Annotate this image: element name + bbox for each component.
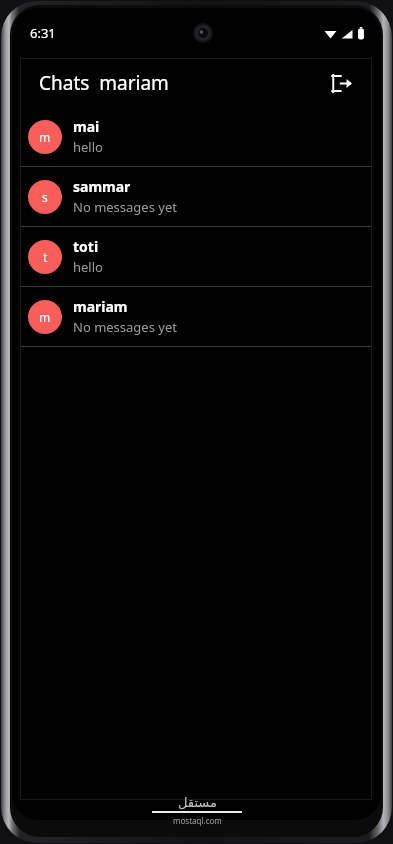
staticText: مستقل <box>178 795 217 810</box>
staticText: hello <box>73 138 103 156</box>
staticText: 6:31 <box>30 24 56 42</box>
staticText: sammar <box>73 177 131 196</box>
button[interactable]: m <box>21 107 371 166</box>
staticText: mariam <box>73 297 128 316</box>
button[interactable]: t <box>21 227 371 286</box>
staticText: No messages yet <box>73 198 177 216</box>
staticText: m <box>39 129 51 145</box>
staticText: t <box>43 249 48 265</box>
staticText: m <box>39 309 51 325</box>
staticText: Chats mariam <box>39 70 169 96</box>
button[interactable]: m <box>21 287 371 346</box>
staticText: No messages yet <box>73 318 177 336</box>
button[interactable]: s <box>21 167 371 226</box>
staticText: mai <box>73 117 100 136</box>
button[interactable]: Log out <box>321 63 361 103</box>
staticText: s <box>42 189 48 205</box>
staticText: mostaql.com <box>173 815 222 826</box>
staticText: hello <box>73 258 103 276</box>
staticText: toti <box>73 237 99 256</box>
